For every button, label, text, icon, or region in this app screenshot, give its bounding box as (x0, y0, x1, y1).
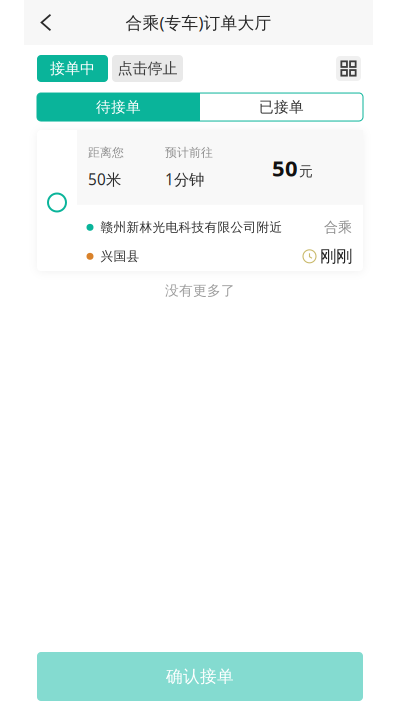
button[interactable]: 接单中 (37, 55, 108, 82)
button[interactable]: Select order (42, 185, 72, 215)
staticText: 50 (272, 153, 298, 183)
staticText: 元 (299, 163, 313, 180)
button[interactable]: Grid view (336, 56, 363, 81)
staticText: 距离您 (88, 145, 124, 160)
staticText: 合乘 (324, 218, 352, 236)
staticText: 50米 (88, 169, 121, 190)
button[interactable]: 点击停止 (112, 55, 183, 82)
staticText: 赣州新林光电科技有限公司附近 (100, 219, 282, 235)
staticText: 合乘(专车)订单大厅 (125, 11, 271, 34)
button[interactable]: 已接单 (200, 93, 363, 121)
staticText: 确认接单 (166, 666, 234, 687)
staticText: 1分钟 (165, 169, 204, 190)
button[interactable]: 确认接单 (37, 652, 363, 701)
staticText: 待接单 (96, 98, 141, 116)
staticText: 接单中 (50, 59, 95, 78)
button[interactable]: 距离您 (37, 130, 363, 271)
button[interactable]: Back (24, 0, 68, 45)
staticText: 已接单 (259, 98, 304, 116)
staticText: 兴国县 (100, 248, 139, 264)
staticText: 没有更多了 (165, 282, 235, 299)
staticText: 刚刚 (320, 246, 352, 267)
staticText: 点击停止 (117, 59, 177, 78)
staticText: 预计前往 (165, 145, 213, 160)
button[interactable]: 待接单 (37, 93, 200, 121)
